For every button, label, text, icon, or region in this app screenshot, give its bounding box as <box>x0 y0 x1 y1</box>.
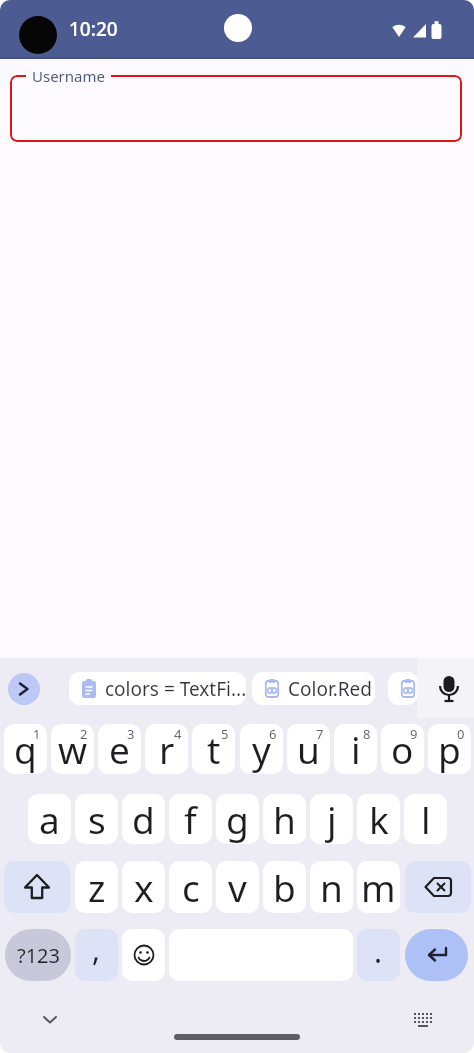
staticText: s <box>88 794 106 844</box>
staticText: 9 <box>410 725 418 743</box>
staticText: n <box>320 862 343 912</box>
staticText: 8 <box>363 725 371 743</box>
staticText: t <box>207 724 221 774</box>
staticText: d <box>132 794 155 844</box>
button[interactable]: t <box>192 724 235 774</box>
staticText: e <box>109 724 130 774</box>
button[interactable]: v <box>216 861 259 913</box>
button[interactable]: o <box>381 724 424 774</box>
staticText: 10:20 <box>69 16 118 42</box>
button[interactable]: s <box>75 794 118 844</box>
button[interactable]: e <box>98 724 141 774</box>
staticText: y <box>252 724 271 774</box>
staticText: g <box>226 794 249 844</box>
button[interactable]: y <box>240 724 283 774</box>
button[interactable] <box>8 673 40 705</box>
staticText: i <box>351 724 361 774</box>
button[interactable]: z <box>75 861 118 913</box>
staticText: u <box>297 724 320 774</box>
button[interactable]: k <box>357 794 400 844</box>
button[interactable]: f <box>169 794 212 844</box>
staticText: k <box>369 794 389 844</box>
button[interactable]: m <box>357 861 400 913</box>
button[interactable]: r <box>145 724 188 774</box>
button[interactable]: x <box>122 861 165 913</box>
button[interactable]: , <box>75 929 118 981</box>
staticText: . <box>374 931 383 972</box>
button[interactable] <box>405 861 471 913</box>
staticText: z <box>88 862 106 912</box>
button[interactable]: . <box>357 929 400 981</box>
staticText: a <box>39 794 60 844</box>
staticText: Color.Red <box>288 676 373 702</box>
staticText: r <box>159 724 175 774</box>
staticText: 5 <box>221 725 229 743</box>
staticText: 7 <box>316 725 324 743</box>
staticText: o <box>391 724 414 774</box>
button[interactable]: q <box>4 724 47 774</box>
staticText: f <box>184 794 197 844</box>
staticText: ?123 <box>17 942 60 969</box>
button[interactable] <box>405 929 468 981</box>
button[interactable]: c <box>169 861 212 913</box>
button[interactable]: n <box>310 861 353 913</box>
staticText: 6 <box>269 725 277 743</box>
button[interactable]: l <box>404 794 447 844</box>
button[interactable]: ?123 <box>5 929 71 981</box>
staticText: q <box>14 724 37 774</box>
button[interactable]: a <box>28 794 71 844</box>
staticText: m <box>361 862 396 912</box>
staticText: w <box>58 724 88 774</box>
button[interactable]: g <box>216 794 259 844</box>
button[interactable]: j <box>310 794 353 844</box>
button[interactable]: h <box>263 794 306 844</box>
staticText: 0 <box>457 725 465 743</box>
staticText: Username <box>32 66 105 86</box>
staticText: 1 <box>33 725 41 743</box>
button[interactable]: u <box>287 724 330 774</box>
button[interactable]: p <box>428 724 471 774</box>
staticText: c <box>182 862 200 912</box>
staticText: b <box>273 862 296 912</box>
button[interactable]: d <box>122 794 165 844</box>
button[interactable]: b <box>263 861 306 913</box>
button[interactable] <box>10 75 462 142</box>
button[interactable]: colors = TextFi... <box>69 672 246 705</box>
staticText: 2 <box>80 725 88 743</box>
staticText: x <box>134 862 154 912</box>
staticText: p <box>438 724 461 774</box>
button[interactable]: w <box>51 724 94 774</box>
button[interactable]: i <box>334 724 377 774</box>
button[interactable] <box>388 672 418 705</box>
button[interactable] <box>434 672 464 706</box>
button[interactable] <box>4 861 70 913</box>
staticText: v <box>228 862 247 912</box>
staticText: l <box>421 794 431 844</box>
staticText: 3 <box>127 725 135 743</box>
staticText: 4 <box>174 725 182 743</box>
staticText: , <box>92 929 101 970</box>
button[interactable] <box>34 1006 66 1034</box>
button[interactable] <box>406 1004 440 1034</box>
staticText: colors = TextFi... <box>105 676 246 702</box>
button[interactable] <box>122 929 165 981</box>
staticText: h <box>273 794 296 844</box>
staticText: j <box>327 794 337 844</box>
button[interactable]: Color.Red <box>252 672 375 705</box>
